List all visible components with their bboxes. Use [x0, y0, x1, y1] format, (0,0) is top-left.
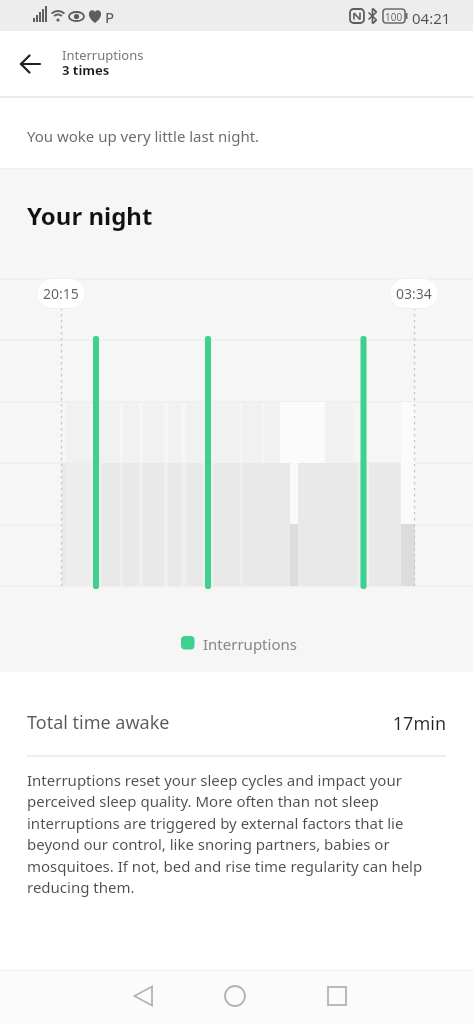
staticText: 04:21 [412, 8, 451, 28]
button[interactable] [10, 45, 52, 83]
staticText: beyond our control, like snoring partner… [27, 834, 390, 854]
staticText: 100 [385, 10, 403, 24]
button[interactable] [0, 970, 157, 1024]
staticText: 20:15 [43, 284, 79, 303]
button[interactable] [315, 970, 473, 1024]
staticText: interruptions are triggered by external … [27, 813, 404, 833]
staticText: perceived sleep quality. More often than… [27, 791, 379, 811]
staticText: reducing them. [27, 877, 135, 897]
staticText: Interruptions reset your sleep cycles an… [27, 770, 402, 790]
staticText: 03:34 [396, 284, 432, 303]
button[interactable] [157, 970, 315, 1024]
staticText: mosquitoes. If not, bed and rise time re… [27, 856, 423, 876]
staticText: Your night [27, 199, 153, 232]
staticText: Interruptions [203, 634, 297, 654]
staticText: 17min [346, 711, 446, 736]
staticText: You woke up very little last night. [27, 126, 260, 146]
staticText: Interruptions [62, 46, 144, 64]
staticText: P [105, 7, 115, 27]
button[interactable]: 03:34 [389, 278, 439, 309]
staticText: 3 times [62, 61, 110, 79]
button[interactable]: 20:15 [36, 278, 86, 309]
staticText: Total time awake [27, 710, 170, 735]
